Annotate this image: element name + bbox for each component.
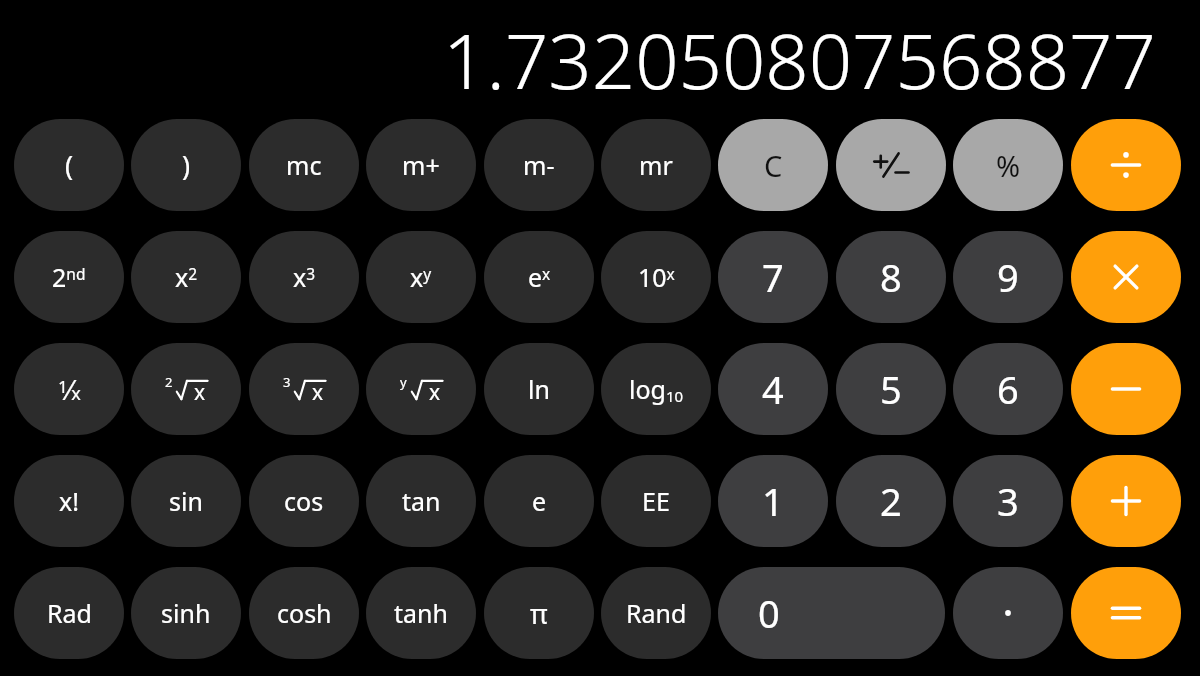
staticText: x xyxy=(429,378,441,407)
button[interactable]: x3 xyxy=(249,231,359,323)
staticText: 1⁄x xyxy=(58,371,81,408)
button[interactable]: xy xyxy=(366,231,476,323)
button[interactable]: sin xyxy=(131,455,241,547)
staticText: x xyxy=(194,378,206,407)
staticText: m+ xyxy=(402,148,440,182)
staticText: e xyxy=(532,484,547,518)
staticText: x xyxy=(312,378,324,407)
staticText: 10x xyxy=(638,260,675,294)
button[interactable]: m+ xyxy=(366,119,476,211)
button[interactable]: plus xyxy=(1071,455,1181,547)
staticText: sinh xyxy=(161,596,211,630)
staticText: 3 xyxy=(997,475,1019,527)
staticText: ex xyxy=(528,260,551,294)
button[interactable]: log10 xyxy=(601,343,711,435)
button[interactable]: π xyxy=(484,567,594,659)
staticText: x3 xyxy=(293,260,316,294)
staticText: 1 xyxy=(762,475,784,527)
button[interactable]: 10x xyxy=(601,231,711,323)
button[interactable]: mr xyxy=(601,119,711,211)
button[interactable]: minus xyxy=(1071,343,1181,435)
button[interactable]: root 2 xyxy=(131,343,241,435)
button[interactable]: % xyxy=(953,119,1063,211)
staticText: cosh xyxy=(277,596,332,630)
staticText: 9 xyxy=(997,251,1019,303)
button[interactable]: cosh xyxy=(249,567,359,659)
staticText: Rad xyxy=(47,596,92,630)
button[interactable]: tan xyxy=(366,455,476,547)
button[interactable]: cos xyxy=(249,455,359,547)
staticText: x! xyxy=(59,484,79,518)
button[interactable]: divide xyxy=(1071,119,1181,211)
staticText: 2nd xyxy=(52,260,86,294)
staticText: 8 xyxy=(880,251,902,303)
staticText: log10 xyxy=(629,372,684,406)
staticText: % xyxy=(996,146,1021,185)
button[interactable]: Rad xyxy=(14,567,124,659)
button[interactable]: plusminus xyxy=(836,119,946,211)
staticText: 0 xyxy=(758,587,780,639)
staticText: 7 xyxy=(762,251,784,303)
staticText: 1.732050807568877 xyxy=(443,8,1156,112)
button[interactable]: dot xyxy=(953,567,1063,659)
staticText: Rand xyxy=(626,596,687,630)
button[interactable]: x! xyxy=(14,455,124,547)
staticText: mr xyxy=(639,148,673,182)
button[interactable]: 9 xyxy=(953,231,1063,323)
staticText: tan xyxy=(402,484,441,518)
staticText: π xyxy=(530,595,548,632)
button[interactable]: 1 xyxy=(718,455,828,547)
button[interactable]: 2 xyxy=(836,455,946,547)
staticText: sin xyxy=(169,484,203,518)
staticText: y xyxy=(400,373,407,391)
button[interactable]: 6 xyxy=(953,343,1063,435)
button[interactable]: 8 xyxy=(836,231,946,323)
button[interactable]: 2nd xyxy=(14,231,124,323)
button[interactable]: C xyxy=(718,119,828,211)
button[interactable]: m- xyxy=(484,119,594,211)
button[interactable]: x2 xyxy=(131,231,241,323)
button[interactable]: 7 xyxy=(718,231,828,323)
button[interactable]: root 3 xyxy=(249,343,359,435)
staticText: 6 xyxy=(997,363,1019,415)
staticText: 2 xyxy=(880,475,902,527)
button[interactable]: sinh xyxy=(131,567,241,659)
button[interactable]: tanh xyxy=(366,567,476,659)
button[interactable]: oneoverx xyxy=(14,343,124,435)
staticText: cos xyxy=(284,484,324,518)
button[interactable]: times xyxy=(1071,231,1181,323)
button[interactable]: ) xyxy=(131,119,241,211)
staticText: 3 xyxy=(283,373,291,391)
staticText: 5 xyxy=(880,363,902,415)
button[interactable]: EE xyxy=(601,455,711,547)
staticText: C xyxy=(764,146,783,185)
button[interactable]: 4 xyxy=(718,343,828,435)
button[interactable]: ( xyxy=(14,119,124,211)
button[interactable]: root y xyxy=(366,343,476,435)
button[interactable]: 0 xyxy=(718,567,945,659)
button[interactable]: equals xyxy=(1071,567,1181,659)
button[interactable]: ln xyxy=(484,343,594,435)
staticText: mc xyxy=(286,148,322,182)
staticText: x2 xyxy=(175,260,198,294)
button[interactable]: Rand xyxy=(601,567,711,659)
button[interactable]: 5 xyxy=(836,343,946,435)
button[interactable]: ex xyxy=(484,231,594,323)
button[interactable]: mc xyxy=(249,119,359,211)
staticText: ( xyxy=(65,147,74,184)
button[interactable]: 3 xyxy=(953,455,1063,547)
staticText: xy xyxy=(410,260,432,294)
staticText: 4 xyxy=(762,363,784,415)
staticText: ln xyxy=(528,372,550,406)
staticText: 2 xyxy=(165,373,173,391)
staticText: tanh xyxy=(394,596,448,630)
button[interactable]: e xyxy=(484,455,594,547)
staticText: EE xyxy=(642,484,670,518)
staticText: ) xyxy=(182,147,191,184)
staticText: m- xyxy=(523,148,555,182)
